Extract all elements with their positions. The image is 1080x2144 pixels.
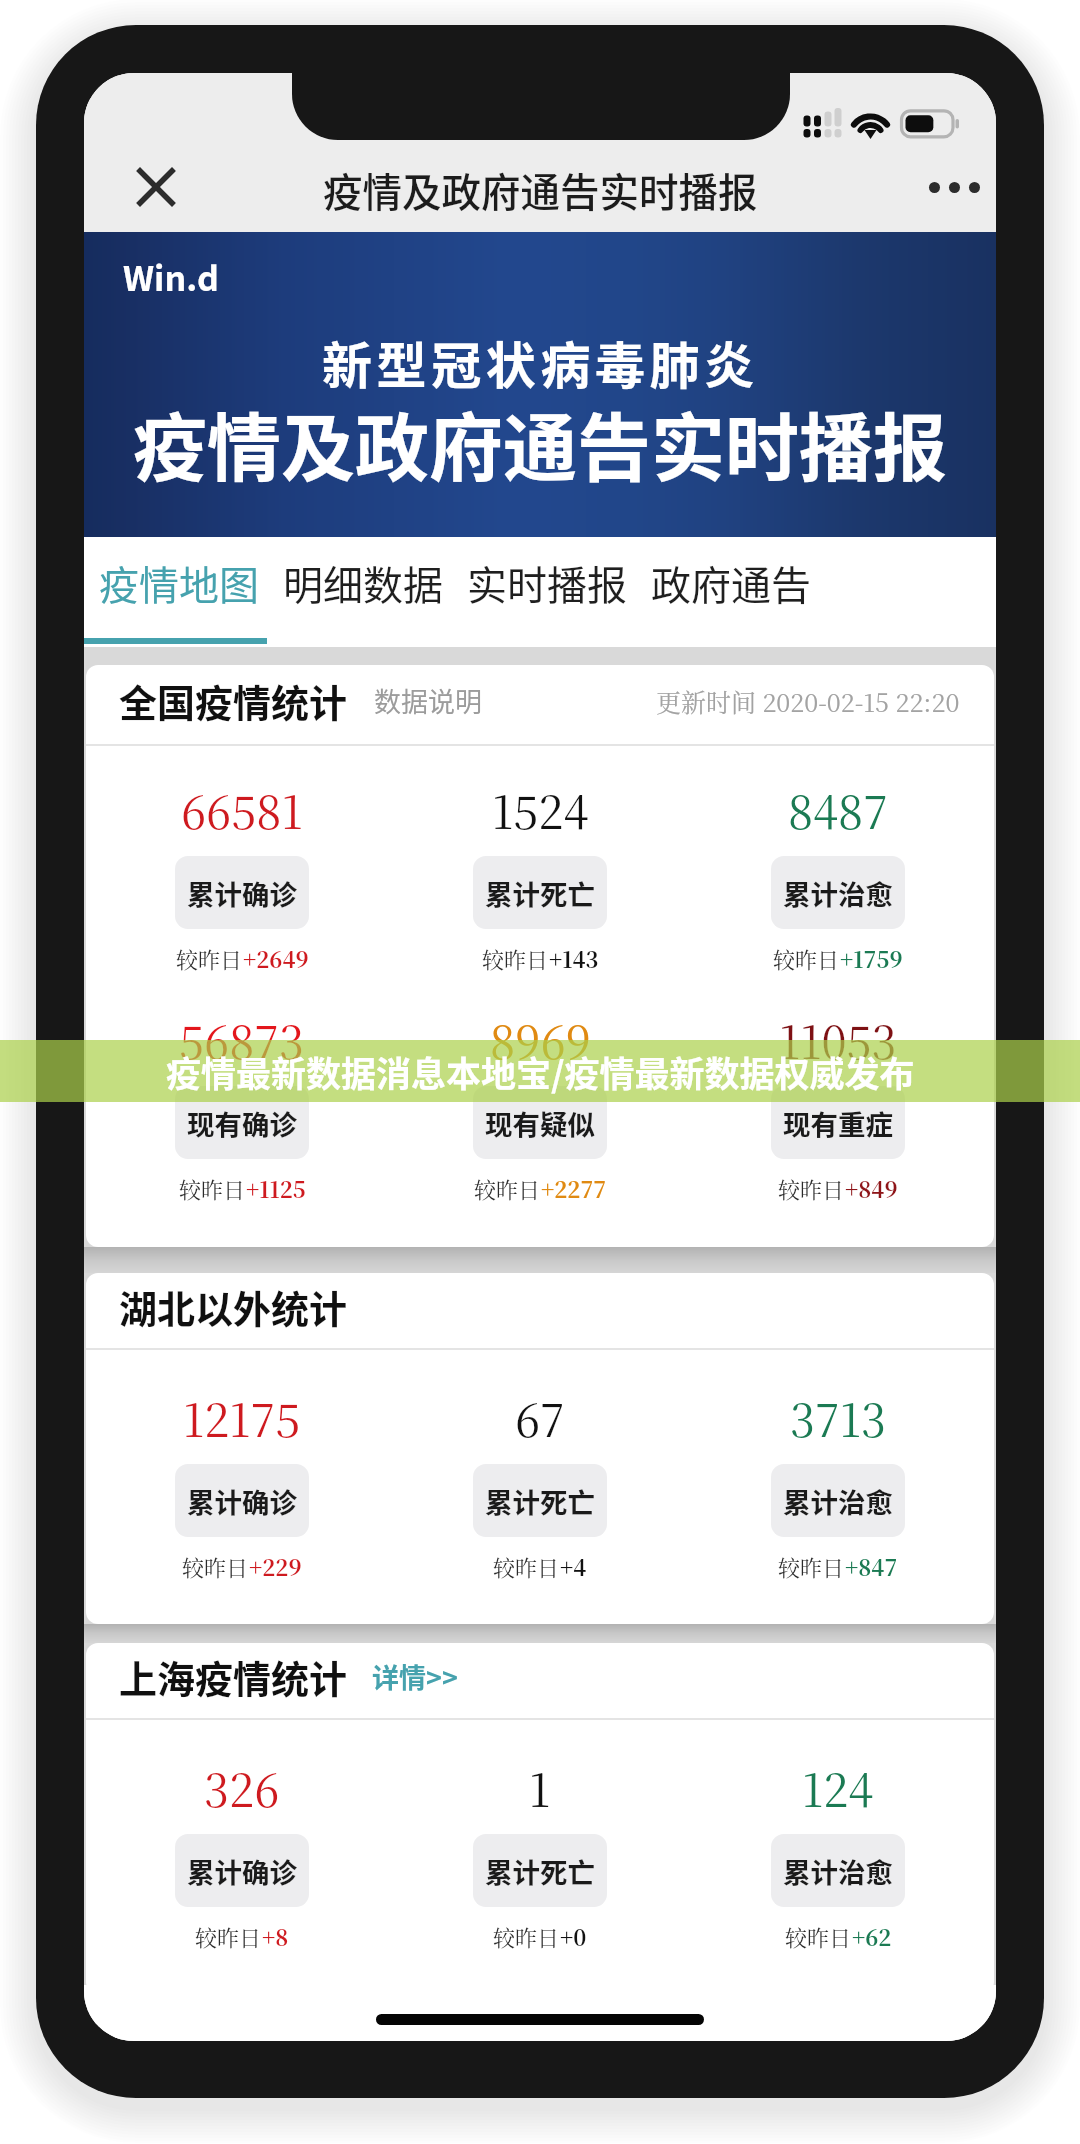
staticText: 实时播报 (467, 554, 627, 612)
staticText: +8 (262, 1921, 289, 1953)
staticText: 累计治愈 (783, 1851, 893, 1891)
staticText: 更新时间 2020-02-15 22:20 (656, 683, 960, 719)
staticText: 累计死亡 (485, 1851, 595, 1891)
staticText: 较昨日 (482, 943, 549, 975)
staticText: 上海疫情统计 (119, 1649, 348, 1704)
staticText: 全国疫情统计 (119, 673, 348, 728)
staticText: 67 (515, 1385, 565, 1450)
staticText: 疫情及政府通告实时播报 (133, 389, 947, 496)
staticText: 较昨日 (493, 1551, 560, 1583)
staticText: 累计治愈 (783, 1481, 893, 1521)
button[interactable]: 疫情地图 (87, 534, 271, 632)
staticText: 12175 (183, 1385, 301, 1450)
staticText: 较昨日 (176, 943, 243, 975)
staticText: 累计死亡 (485, 873, 595, 913)
staticText: 政府通告 (651, 554, 811, 612)
button[interactable]: 政府通告 (639, 534, 823, 632)
staticText: 累计治愈 (783, 873, 893, 913)
staticText: 疫情地图 (99, 554, 259, 612)
staticText: 现有确诊 (187, 1103, 297, 1143)
staticText: 较昨日 (474, 1173, 541, 1205)
staticText: 较昨日 (179, 1173, 246, 1205)
staticText: +849 (845, 1173, 898, 1205)
staticText: 8487 (788, 777, 888, 842)
button[interactable]: 实时播报 (455, 534, 639, 632)
staticText: 详情>> (372, 1657, 458, 1696)
staticText: 较昨日 (778, 1551, 845, 1583)
staticText: 数据说明 (374, 681, 482, 720)
staticText: 湖北以外统计 (119, 1279, 348, 1334)
staticText: +1125 (246, 1173, 306, 1205)
button[interactable]: 上海疫情统计 (86, 1643, 994, 1994)
button[interactable]: Close (114, 145, 198, 229)
staticText: +2277 (541, 1173, 607, 1205)
staticText: 11053 (779, 1007, 897, 1072)
staticText: +229 (249, 1551, 302, 1583)
staticText: 明细数据 (283, 554, 443, 612)
staticText: 1524 (492, 777, 589, 842)
staticText: +847 (845, 1551, 898, 1583)
button[interactable]: More options (912, 145, 996, 229)
staticText: 326 (204, 1755, 280, 1820)
staticText: Win.d (123, 252, 219, 301)
staticText: +4 (560, 1551, 587, 1583)
staticText: +2649 (243, 943, 309, 975)
staticText: 累计确诊 (187, 873, 297, 913)
staticText: 66581 (181, 777, 303, 842)
staticText: +1759 (840, 943, 903, 975)
staticText: 56873 (179, 1007, 305, 1072)
staticText: 累计死亡 (485, 1481, 595, 1521)
staticText: 较昨日 (785, 1921, 852, 1953)
button[interactable]: 明细数据 (271, 534, 455, 632)
staticText: 较昨日 (195, 1921, 262, 1953)
staticText: 疫情最新数据消息本地宝/疫情最新数据权威发布 (166, 1046, 915, 1097)
staticText: +143 (549, 943, 599, 975)
staticText: 疫情及政府通告实时播报 (323, 161, 758, 218)
staticText: 较昨日 (778, 1173, 845, 1205)
button[interactable]: 全国疫情统计 (86, 665, 994, 1247)
staticText: 较昨日 (493, 1921, 560, 1953)
staticText: 1 (529, 1755, 551, 1820)
staticText: 累计确诊 (187, 1481, 297, 1521)
staticText: +62 (852, 1921, 892, 1953)
staticText: 3713 (790, 1385, 887, 1450)
staticText: 较昨日 (773, 943, 840, 975)
staticText: 现有疑似 (485, 1103, 595, 1143)
staticText: 累计确诊 (187, 1851, 297, 1891)
staticText: 现有重症 (783, 1103, 893, 1143)
staticText: 8969 (490, 1007, 591, 1072)
staticText: 较昨日 (182, 1551, 249, 1583)
staticText: 新型冠状病毒肺炎 (322, 326, 759, 398)
staticText: +0 (560, 1921, 587, 1953)
staticText: 124 (802, 1755, 874, 1820)
button[interactable]: 湖北以外统计 (86, 1273, 994, 1624)
